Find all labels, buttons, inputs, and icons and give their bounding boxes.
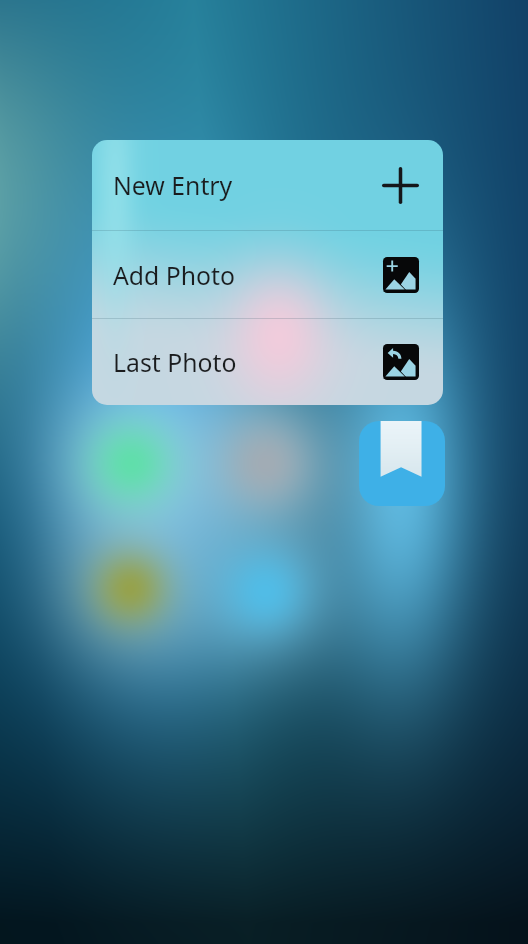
button[interactable]: Journal app [359,421,445,506]
staticText: Last Photo [113,345,237,379]
button[interactable]: New Entry [92,140,443,230]
other: Add [382,167,419,204]
staticText: New Entry [113,168,233,202]
button[interactable]: Last Photo [92,319,443,405]
button[interactable]: Add Photo [92,231,443,318]
staticText: Add Photo [113,258,236,292]
